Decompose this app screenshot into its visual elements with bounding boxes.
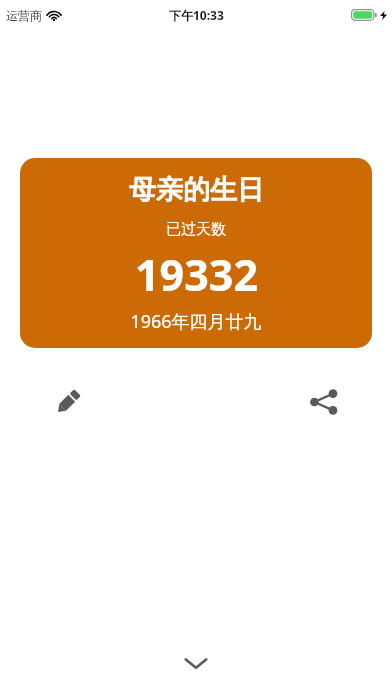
staticText: 母亲的生日 xyxy=(129,173,264,207)
staticText: 下午10:33 xyxy=(169,7,224,23)
staticText: 19332 xyxy=(135,245,258,304)
staticText: 运营商 xyxy=(6,8,42,23)
button[interactable]: 母亲的生日 xyxy=(20,158,372,348)
staticText: 1966年四月廿九 xyxy=(130,309,262,334)
button[interactable]: Edit xyxy=(44,378,92,426)
button[interactable]: Expand xyxy=(172,639,220,687)
staticText: 已过天数 xyxy=(166,220,226,239)
button[interactable]: Share xyxy=(300,378,348,426)
